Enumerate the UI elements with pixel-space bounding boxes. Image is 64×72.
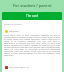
button[interactable]: Important (5, 30, 62, 33)
staticText: For student / parent (13, 3, 52, 8)
staticText: The card (26, 14, 39, 18)
staticText: Lorem ipsum dolor sit amet consectetur a… (4, 34, 60, 56)
staticText: Important (9, 30, 19, 33)
staticText: Posted 12 Jan 2024 (4, 23, 22, 26)
button[interactable]: Read more about this (5, 66, 62, 69)
button[interactable]: For student / parent (0, 0, 64, 11)
button[interactable]: The card (2, 12, 62, 20)
staticText: Read more about this (9, 66, 30, 69)
